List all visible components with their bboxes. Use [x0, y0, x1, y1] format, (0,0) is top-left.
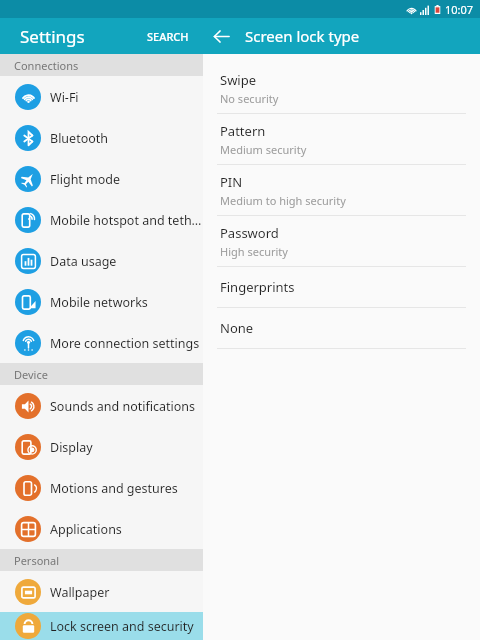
button[interactable]: PIN	[203, 165, 480, 216]
staticText: Pattern	[220, 122, 266, 140]
button[interactable]: Back	[203, 18, 239, 54]
staticText: Medium to high security	[220, 193, 346, 208]
staticText: SEARCH	[147, 29, 189, 44]
button[interactable]: Motions and gestures	[0, 467, 203, 508]
staticText: Device	[14, 367, 48, 382]
button[interactable]: Pattern	[203, 114, 480, 165]
staticText: Bluetooth	[50, 130, 109, 147]
staticText: Lock screen and security	[50, 618, 194, 635]
staticText: Applications	[50, 521, 122, 538]
staticText: Mobile hotspot and tether..	[50, 212, 203, 229]
staticText: None	[220, 319, 254, 337]
button[interactable]: Display	[0, 426, 203, 467]
button[interactable]: Applications	[0, 508, 203, 549]
staticText: Settings	[20, 25, 85, 48]
staticText: Password	[220, 224, 279, 242]
staticText: Swipe	[220, 71, 257, 89]
staticText: Connections	[14, 58, 79, 73]
button[interactable]: Swipe	[203, 63, 480, 114]
staticText: Flight mode	[50, 171, 121, 188]
staticText: 10:07	[445, 2, 474, 17]
button[interactable]: Mobile networks	[0, 281, 203, 322]
staticText: Personal	[14, 553, 60, 568]
staticText: Mobile networks	[50, 294, 148, 311]
staticText: Display	[50, 439, 93, 456]
staticText: More connection settings	[50, 335, 200, 352]
button[interactable]: SEARCH	[133, 18, 203, 54]
button[interactable]: Password	[203, 216, 480, 267]
staticText: PIN	[220, 173, 243, 191]
staticText: Medium security	[220, 142, 307, 157]
staticText: Wallpaper	[50, 584, 110, 601]
button[interactable]: Wi-Fi	[0, 76, 203, 117]
button[interactable]: None	[203, 308, 480, 349]
button[interactable]: Fingerprints	[203, 267, 480, 308]
button[interactable]: Data usage	[0, 240, 203, 281]
button[interactable]: Mobile hotspot and tether..	[0, 199, 203, 240]
staticText: Data usage	[50, 253, 117, 270]
staticText: Wi-Fi	[50, 89, 79, 106]
staticText: Sounds and notifications	[50, 398, 196, 415]
staticText: Screen lock type	[245, 26, 360, 46]
button[interactable]: Flight mode	[0, 158, 203, 199]
staticText: High security	[220, 244, 288, 259]
button[interactable]: Wallpaper	[0, 571, 203, 612]
button[interactable]: More connection settings	[0, 322, 203, 363]
staticText: No security	[220, 91, 279, 106]
button[interactable]: Sounds and notifications	[0, 385, 203, 426]
button[interactable]: Settings	[0, 18, 203, 54]
staticText: Fingerprints	[220, 278, 295, 296]
button[interactable]: Bluetooth	[0, 117, 203, 158]
button[interactable]: Lock screen and security	[0, 612, 203, 640]
staticText: Motions and gestures	[50, 480, 178, 497]
